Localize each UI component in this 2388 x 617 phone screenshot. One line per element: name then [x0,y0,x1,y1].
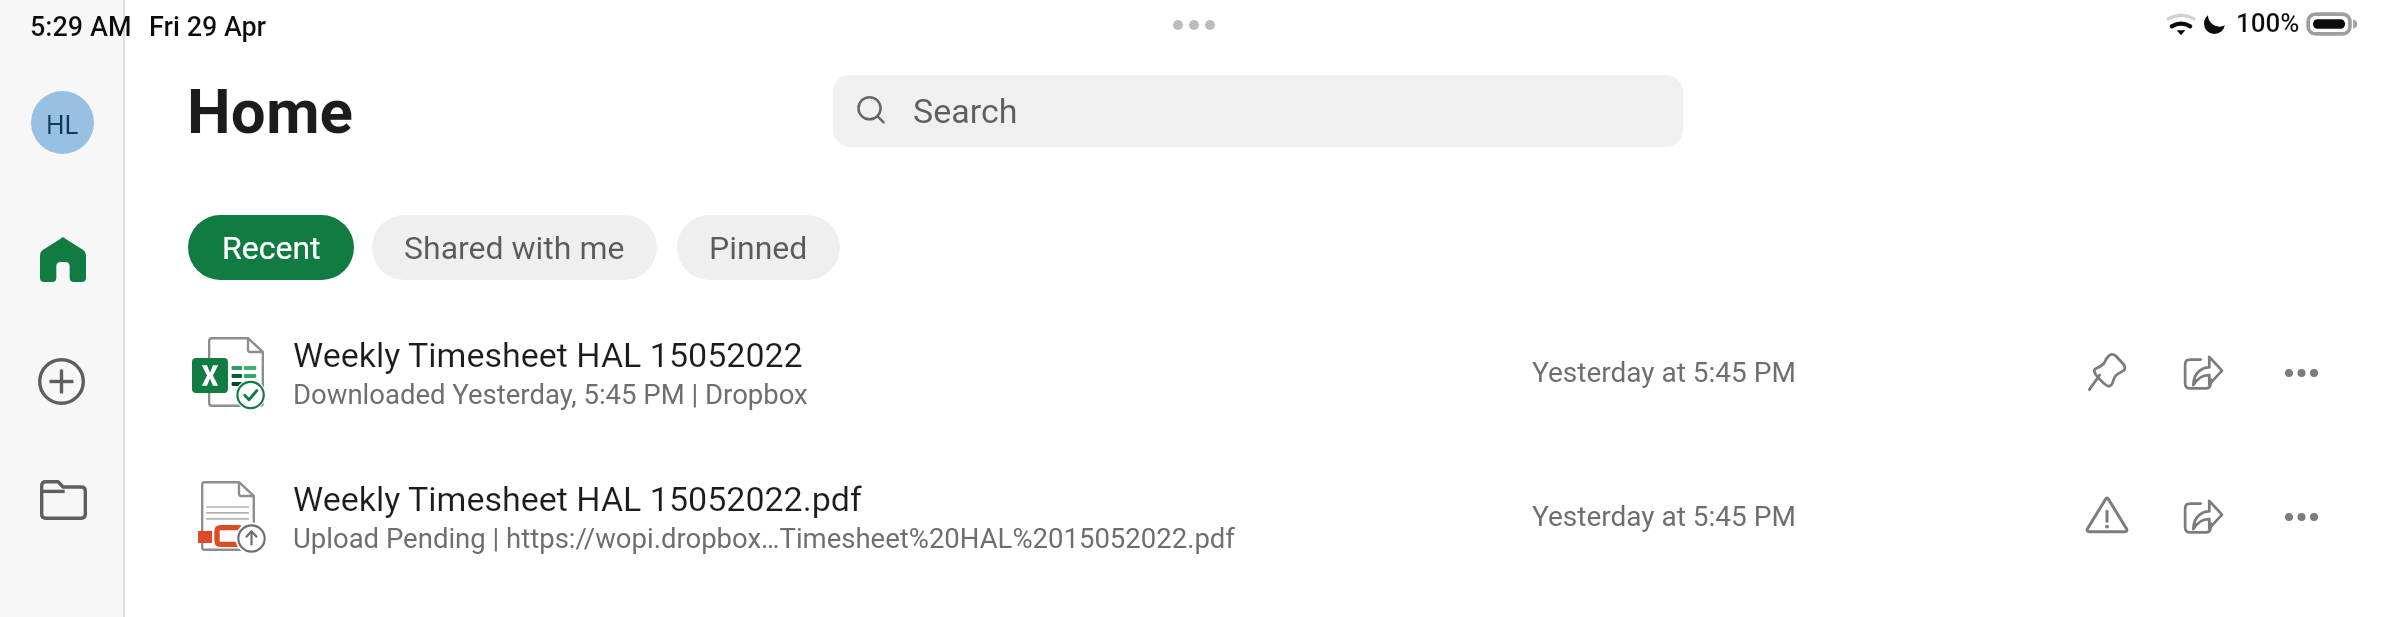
staticText: Upload Pending | https://wopi.dropbox…Ti… [293,522,1235,554]
staticText: Pinned [709,229,808,267]
button[interactable]: Files [26,463,100,537]
staticText: Yesterday at 5:45 PM [1532,356,1796,389]
button[interactable]: Shared with me [372,215,657,280]
staticText: Yesterday at 5:45 PM [1532,500,1796,533]
staticText: Fri 29 Apr [149,11,267,43]
button[interactable]: Share [2167,338,2237,408]
staticText: Home [187,75,354,148]
button[interactable]: Pinned [677,215,840,280]
button[interactable]: Pin [2072,338,2142,408]
button[interactable]: Upload error [2072,482,2142,552]
button[interactable]: More options [2266,338,2336,408]
staticText: 5:29 AM [30,11,132,43]
button[interactable]: Account [31,91,94,154]
button[interactable]: Recent [188,215,354,280]
button[interactable]: More options [2266,482,2336,552]
staticText: Recent [222,229,321,267]
staticText: Shared with me [404,229,625,267]
button[interactable]: Create new [24,344,98,418]
staticText: Search [913,91,1018,131]
button[interactable]: Weekly Timesheet HAL 15052022.pdf [0,474,2388,570]
staticText: Weekly Timesheet HAL 15052022.pdf [293,479,862,519]
button[interactable]: Home [26,222,100,296]
staticText: 100% [2236,8,2300,38]
button[interactable]: Weekly Timesheet HAL 15052022 [0,330,2388,426]
staticText: HL [46,110,79,140]
button[interactable]: Search [833,75,1683,147]
staticText: Weekly Timesheet HAL 15052022 [293,335,803,375]
staticText: Downloaded Yesterday, 5:45 PM | Dropbox [293,378,808,410]
button[interactable]: Share [2167,482,2237,552]
